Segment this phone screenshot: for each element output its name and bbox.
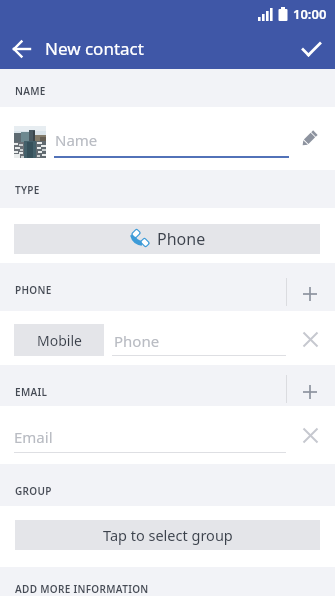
button[interactable] bbox=[296, 378, 324, 406]
staticText: Email bbox=[14, 427, 53, 447]
button[interactable]: Mobile bbox=[14, 324, 104, 356]
staticText: Name bbox=[55, 130, 98, 150]
staticText: TYPE bbox=[15, 183, 40, 197]
staticText: New contact bbox=[45, 37, 144, 60]
button[interactable] bbox=[295, 33, 327, 65]
staticText: NAME bbox=[15, 84, 46, 98]
button[interactable]: Tap to select group bbox=[15, 520, 320, 550]
staticText: GROUP bbox=[15, 484, 52, 498]
staticText: Phone bbox=[157, 228, 206, 250]
button[interactable] bbox=[296, 280, 324, 308]
staticText: PHONE bbox=[15, 283, 52, 297]
staticText: Phone bbox=[114, 331, 160, 351]
button[interactable] bbox=[296, 421, 325, 450]
staticText: 10:00 bbox=[293, 5, 327, 23]
staticText: ADD MORE INFORMATION bbox=[15, 582, 149, 596]
staticText: Mobile bbox=[37, 331, 82, 350]
staticText: EMAIL bbox=[15, 385, 48, 399]
button[interactable] bbox=[6, 33, 38, 65]
button[interactable] bbox=[294, 124, 324, 154]
button[interactable]: Phone bbox=[14, 224, 320, 254]
button[interactable] bbox=[296, 325, 325, 354]
staticText: Tap to select group bbox=[103, 525, 233, 545]
